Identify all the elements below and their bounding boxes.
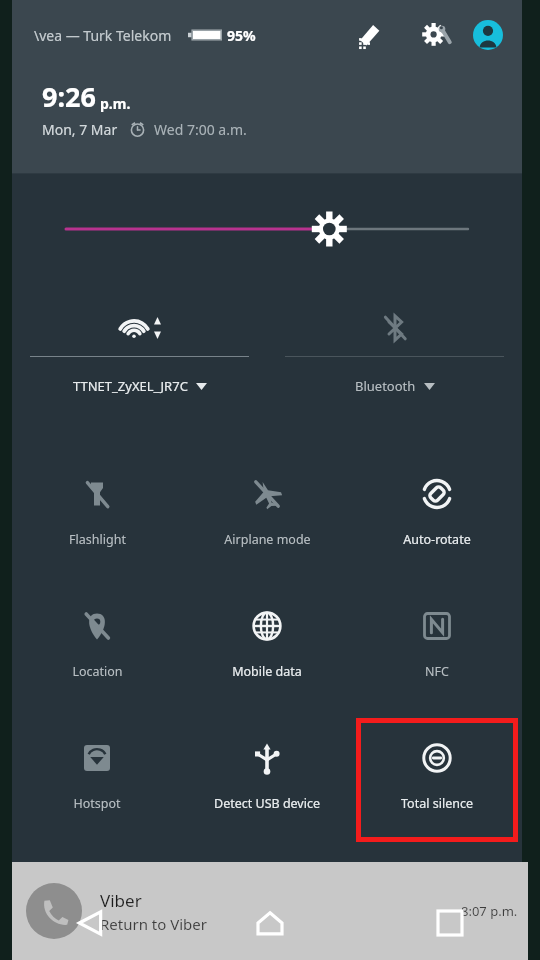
button[interactable]: Auto-rotate	[356, 454, 518, 578]
button[interactable]: Flashlight	[16, 454, 178, 578]
button[interactable]: Detect USB device	[186, 718, 348, 842]
staticText: Mon, 7 Mar	[42, 120, 118, 139]
staticText: Wed 7:00 a.m.	[154, 120, 247, 139]
button[interactable]: User profile	[468, 15, 508, 55]
button[interactable]: Edit quick settings	[350, 15, 390, 55]
staticText: Mobile data	[232, 663, 302, 680]
button[interactable]: TTNET_ZyXEL_JR7C	[30, 284, 249, 424]
staticText: NFC	[425, 663, 449, 680]
staticText: 8:07 p.m.	[461, 902, 518, 920]
staticText: Hotspot	[73, 795, 121, 812]
button[interactable]: Recent apps	[360, 874, 540, 960]
button[interactable]: Mobile data	[186, 586, 348, 710]
staticText: 9:26	[42, 78, 96, 115]
staticText: Viber	[100, 889, 142, 912]
staticText: Flashlight	[69, 531, 126, 548]
staticText: Location	[72, 663, 123, 680]
staticText: Total silence	[401, 795, 473, 812]
button[interactable]: Home	[180, 874, 360, 960]
staticText: Return to Viber	[100, 914, 207, 934]
button[interactable]: NFC	[356, 586, 518, 710]
staticText: Airplane mode	[224, 531, 311, 548]
button[interactable]: Back	[0, 874, 180, 960]
button[interactable]: Bluetooth	[285, 284, 504, 424]
staticText: Auto-rotate	[403, 531, 471, 548]
button[interactable]: Total silence	[356, 718, 518, 842]
staticText: TTNET_ZyXEL_JR7C	[73, 377, 188, 395]
staticText: 95%	[227, 26, 256, 45]
button[interactable]: Hotspot	[16, 718, 178, 842]
button[interactable]: Location	[16, 586, 178, 710]
staticText: p.m.	[100, 94, 131, 113]
button[interactable]: Brightness	[66, 199, 468, 259]
button[interactable]: Airplane mode	[186, 454, 348, 578]
staticText: Detect USB device	[214, 795, 320, 812]
staticText: \vea — Turk Telekom	[34, 26, 172, 45]
staticText: Bluetooth	[355, 377, 416, 395]
button[interactable]: Settings	[414, 13, 458, 57]
